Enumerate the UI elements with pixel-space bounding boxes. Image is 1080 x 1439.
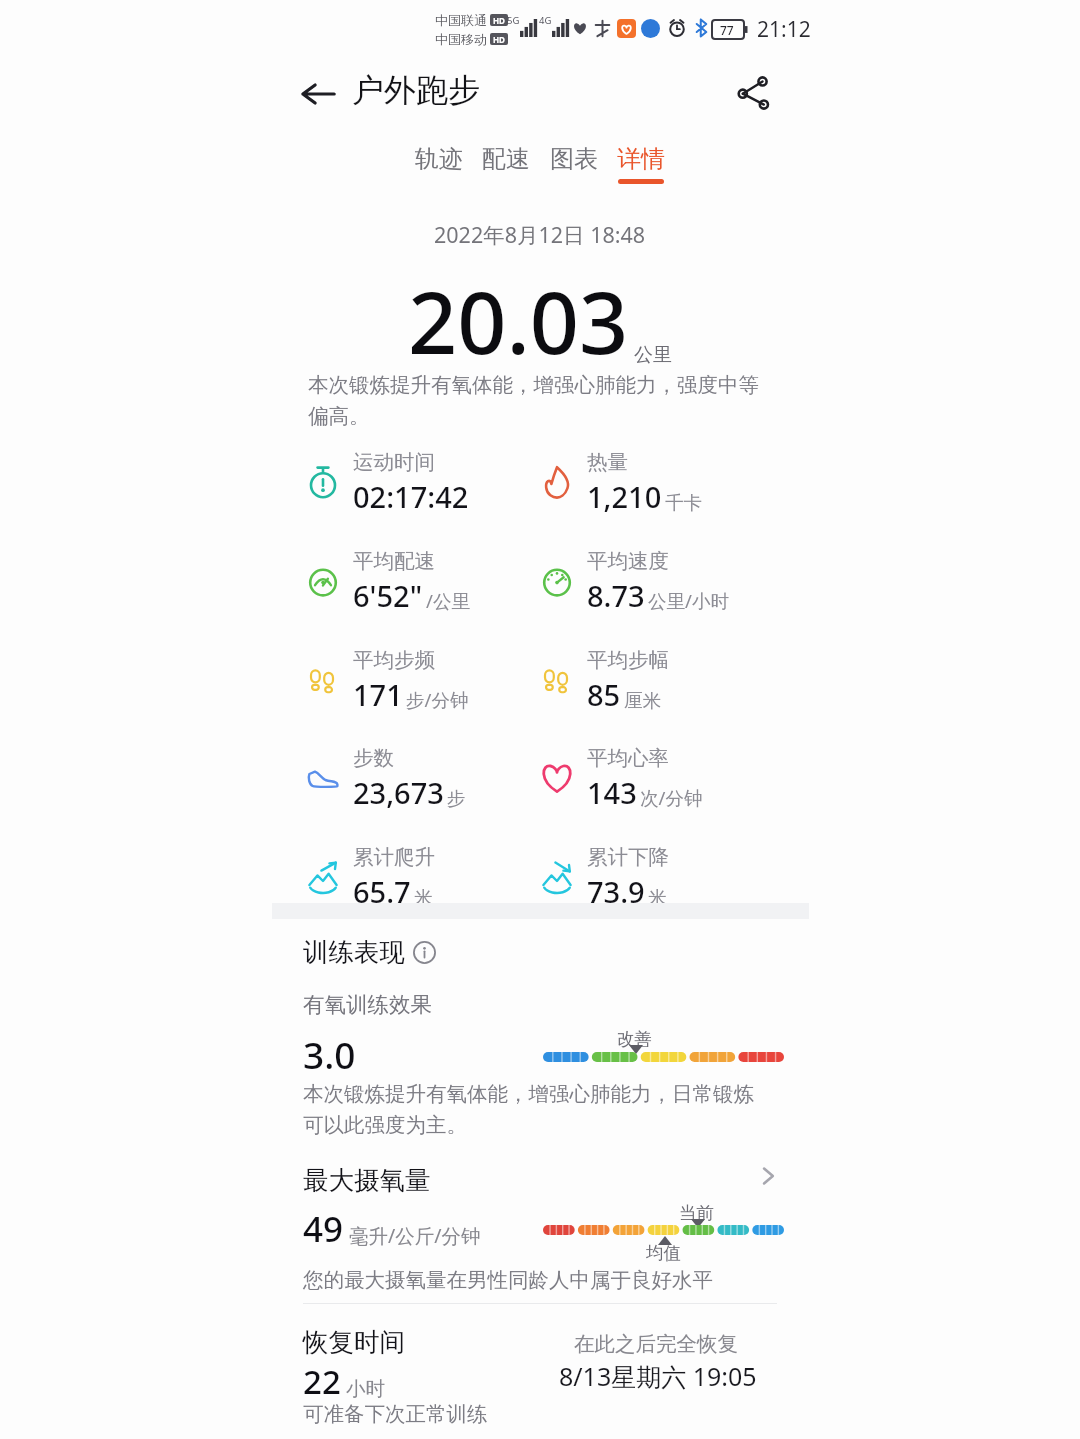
staticText: /公里 — [426, 588, 470, 613]
staticText: 公里 — [634, 343, 672, 367]
staticText: 步 — [447, 787, 466, 810]
staticText: 热量 — [587, 449, 628, 475]
staticText: 8.73 — [587, 576, 645, 615]
staticText: 143 — [587, 773, 637, 812]
staticText: 49 — [303, 1205, 344, 1253]
staticText: 训练表现 — [303, 936, 405, 968]
staticText: 轨迹 — [415, 144, 463, 174]
button[interactable]: 返回 — [288, 64, 348, 124]
staticText: 平均心率 — [587, 745, 669, 771]
button[interactable]: 累计爬升 — [303, 832, 537, 922]
button[interactable]: 平均速度 — [537, 536, 771, 626]
staticText: 73.9 — [587, 872, 645, 911]
staticText: 65.7 — [353, 872, 411, 911]
button[interactable]: 分享 — [722, 62, 784, 124]
staticText: 平均配速 — [353, 548, 435, 574]
staticText: 累计爬升 — [353, 844, 435, 870]
staticText: 厘米 — [624, 689, 661, 712]
button[interactable] — [288, 1152, 792, 1248]
staticText: 恢复时间 — [303, 1326, 405, 1358]
button[interactable]: 步数 — [303, 733, 537, 823]
staticText: 5G — [507, 14, 520, 27]
staticText: 小时 — [346, 1376, 385, 1401]
staticText: 配速 — [482, 144, 530, 174]
staticText: 米 — [648, 886, 667, 909]
staticText: 累计下降 — [587, 844, 669, 870]
staticText: 户外跑步 — [352, 70, 480, 110]
button[interactable]: 运动时间 — [303, 437, 537, 527]
staticText: 当前 — [679, 1202, 714, 1224]
staticText: 6'52" — [353, 576, 423, 615]
staticText: 8/13星期六 19:05 — [559, 1359, 757, 1393]
staticText: 平均步频 — [353, 647, 435, 673]
button[interactable]: 配速 — [472, 144, 540, 190]
staticText: 3.0 — [303, 1029, 356, 1079]
staticText: 米 — [414, 886, 433, 909]
staticText: 均值 — [646, 1242, 681, 1264]
staticText: 22 — [303, 1359, 341, 1404]
staticText: 中国移动 — [435, 31, 487, 47]
button[interactable]: 平均步频 — [303, 635, 537, 725]
button[interactable]: 平均心率 — [537, 733, 771, 823]
button[interactable]: 累计下降 — [537, 832, 771, 922]
staticText: 次/分钟 — [640, 785, 703, 810]
button[interactable]: 热量 — [537, 437, 771, 527]
staticText: 步/分钟 — [406, 687, 469, 712]
button[interactable]: 户外跑步 — [352, 70, 480, 110]
staticText: 图表 — [550, 144, 598, 174]
staticText: 20.03 — [408, 262, 629, 379]
staticText: 2022年8月12日 18:48 — [434, 220, 646, 249]
button[interactable]: 详情 — [607, 144, 675, 190]
staticText: 在此之后完全恢复 — [574, 1331, 738, 1357]
staticText: 运动时间 — [353, 449, 435, 475]
button[interactable]: 轨迹 — [405, 144, 473, 190]
staticText: 4G — [539, 14, 552, 27]
button[interactable]: 训练表现 — [303, 936, 436, 968]
staticText: 85 — [587, 675, 621, 714]
staticText: 171 — [353, 675, 403, 714]
staticText: HD — [493, 15, 505, 26]
staticText: 本次锻炼提升有氧体能，增强心肺能力，强度中等偏高。 — [308, 372, 776, 429]
staticText: 02:17:42 — [353, 477, 469, 516]
staticText: 77 — [720, 22, 734, 38]
staticText: 中国联通 — [435, 12, 487, 28]
staticText: 您的最大摄氧量在男性同龄人中属于良好水平 — [303, 1267, 713, 1293]
staticText: 平均步幅 — [587, 647, 669, 673]
staticText: 详情 — [617, 144, 665, 174]
staticText: 23,673 — [353, 773, 444, 812]
staticText: 改善 — [617, 1028, 652, 1050]
staticText: 步数 — [353, 745, 394, 771]
staticText: 最大摄氧量 — [303, 1164, 431, 1196]
staticText: 本次锻炼提升有氧体能，增强心肺能力，日常锻炼可以此强度为主。 — [303, 1081, 773, 1138]
staticText: 毫升/公斤/分钟 — [349, 1222, 481, 1249]
button[interactable]: 图表 — [540, 144, 608, 190]
staticText: 公里/小时 — [648, 588, 729, 613]
other: 查看最大摄氧量 — [748, 1156, 788, 1196]
staticText: 平均速度 — [587, 548, 669, 574]
staticText: 有氧训练效果 — [303, 991, 432, 1018]
staticText: 21:12 — [757, 15, 811, 44]
button[interactable]: 平均步幅 — [537, 635, 771, 725]
button[interactable]: 平均配速 — [303, 536, 537, 626]
staticText: HD — [493, 34, 505, 45]
staticText: 1,210 — [587, 477, 662, 516]
staticText: 千卡 — [665, 491, 702, 514]
staticText: 可准备下次正常训练 — [303, 1401, 488, 1427]
